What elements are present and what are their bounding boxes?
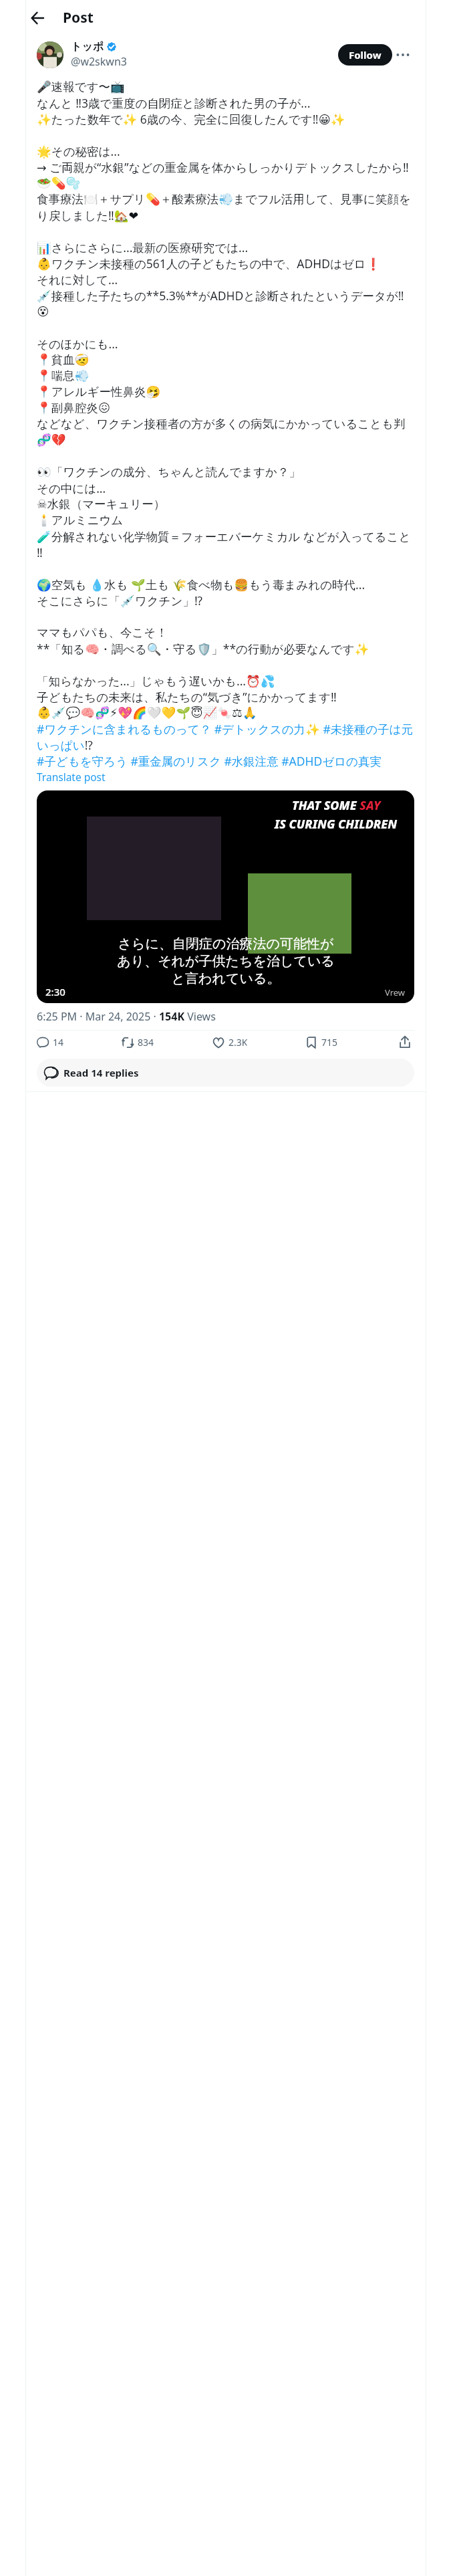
staticText: 🧪分解されない化学物質＝フォーエバーケミカル などが入ってることも... [37, 528, 414, 544]
staticText: 食事療法🍽＋サプリ💊＋酸素療法💨までフル活用して、見事に笑顔を取 [37, 192, 414, 207]
button[interactable]: Play video [37, 790, 414, 1003]
staticText: THAT SOME SAY [292, 797, 381, 814]
staticText: その中には... [37, 480, 106, 496]
staticText: Follow [349, 48, 382, 62]
staticText: ✨たった数年で✨ 6歳の今、完全に回復したんです‼😀✨ [37, 111, 345, 127]
staticText: 「知らなかった...」じゃもう遅いかも...⏰💦 [37, 673, 275, 689]
button[interactable]: Back [26, 7, 49, 29]
button[interactable]: Like [212, 1036, 248, 1049]
staticText: 📍貧血🤕 [37, 352, 90, 367]
staticText: **「知る🧠・調べる🔍・守る🛡️」**の行動が必要なんです✨ [37, 641, 369, 657]
staticText: 🧬💔 [37, 433, 66, 447]
staticText: 👀「ワクチンの成分、ちゃんと読んでますか？」 [37, 465, 301, 479]
staticText: 📍アレルギー性鼻炎🤧 [37, 385, 161, 399]
staticText: 2:30 [45, 985, 65, 998]
staticText: IS CURING CHILDREN [275, 816, 398, 833]
button[interactable]: Share [396, 1033, 414, 1051]
staticText: 😵 [37, 305, 49, 318]
staticText: ☠️水銀（マーキュリー） [37, 497, 166, 512]
staticText: 💉接種した子たちの**5.3%**がADHDと診断されたというデータが‼⚠️ [37, 288, 414, 304]
staticText: 834 [138, 1036, 154, 1049]
staticText: それに対して... [37, 272, 118, 288]
staticText: #ワクチンに含まれるものって？ #デトックスの力✨ #未接種の子は元気 [37, 721, 414, 737]
staticText: なんと ‼3歳で重度の自閉症と診断された男の子が... [37, 95, 311, 111]
button[interactable]: Read 14 replies [37, 1059, 414, 1087]
staticText: Translate post [37, 770, 106, 784]
button[interactable]: Bookmark [305, 1036, 338, 1049]
staticText: 🌟その秘密は... [37, 143, 120, 159]
staticText: 🌍空気も 💧水も 🌱土も 🌾食べ物も🍔もう毒まみれの時代... [37, 576, 365, 593]
staticText: り戻しました‼🏡❤️ [37, 207, 139, 223]
button[interactable]: Follow [338, 44, 392, 66]
staticText: 🎤速報です〜📺 [37, 80, 125, 94]
button[interactable]: Translate post [37, 769, 106, 784]
button[interactable]: More options [392, 44, 414, 66]
staticText: 2.3K [229, 1036, 248, 1049]
staticText: 🕯️アルミニウム [37, 513, 124, 528]
staticText: そこにさらに「💉ワクチン」⁉ [37, 593, 202, 609]
staticText: 📊さらにさらに...最新の医療研究では... [37, 239, 249, 255]
staticText: 📍副鼻腔炎😖 [37, 401, 111, 415]
staticText: → ご両親が“水銀”などの重金属を体からしっかりデトックスしたから‼ [37, 159, 409, 175]
button[interactable]: Repost [122, 1036, 154, 1049]
staticText: Post [63, 8, 94, 27]
staticText: ママもパパも、今こそ！ [37, 625, 168, 640]
staticText: さらに、自閉症の治療法の可能性が あり、それが子供たちを治している と言われてい… [117, 936, 335, 987]
staticText: 715 [321, 1036, 338, 1049]
staticText: 👶💉💬🧠🧬⚡💖🌈🤍💛🌱😇📈🍬⚖️🙏 [37, 706, 257, 720]
staticText: ‼ [37, 544, 43, 560]
staticText: 14 [53, 1036, 64, 1049]
staticText: などなど、ワクチン接種者の方が多くの病気にかかっていることも判明... [37, 417, 414, 431]
staticText: Vrew [385, 986, 406, 998]
staticText: いっぱい⁉ [37, 737, 93, 753]
button[interactable]: Reply [37, 1036, 64, 1049]
staticText: 子どもたちの未来は、私たちの“気づき”にかかってます‼ [37, 689, 337, 705]
staticText: 🥗💊🫧 [37, 177, 81, 191]
staticText: そのほかにも... [37, 336, 118, 352]
staticText: 👶ワクチン未接種の561人の子どもたちの中で、ADHDはゼロ❗ [37, 255, 381, 272]
staticText: @w2skwn3 [71, 54, 127, 69]
staticText: トッポ [71, 40, 104, 53]
staticText: Read 14 replies [63, 1066, 139, 1079]
staticText: #子どもを守ろう #重金属のリスク #水銀注意 #ADHDゼロの真実 [37, 753, 382, 769]
staticText: 📍喘息💨 [37, 368, 90, 383]
staticText: 6:25 PM · Mar 24, 2025 · 154K Views [37, 1009, 216, 1024]
